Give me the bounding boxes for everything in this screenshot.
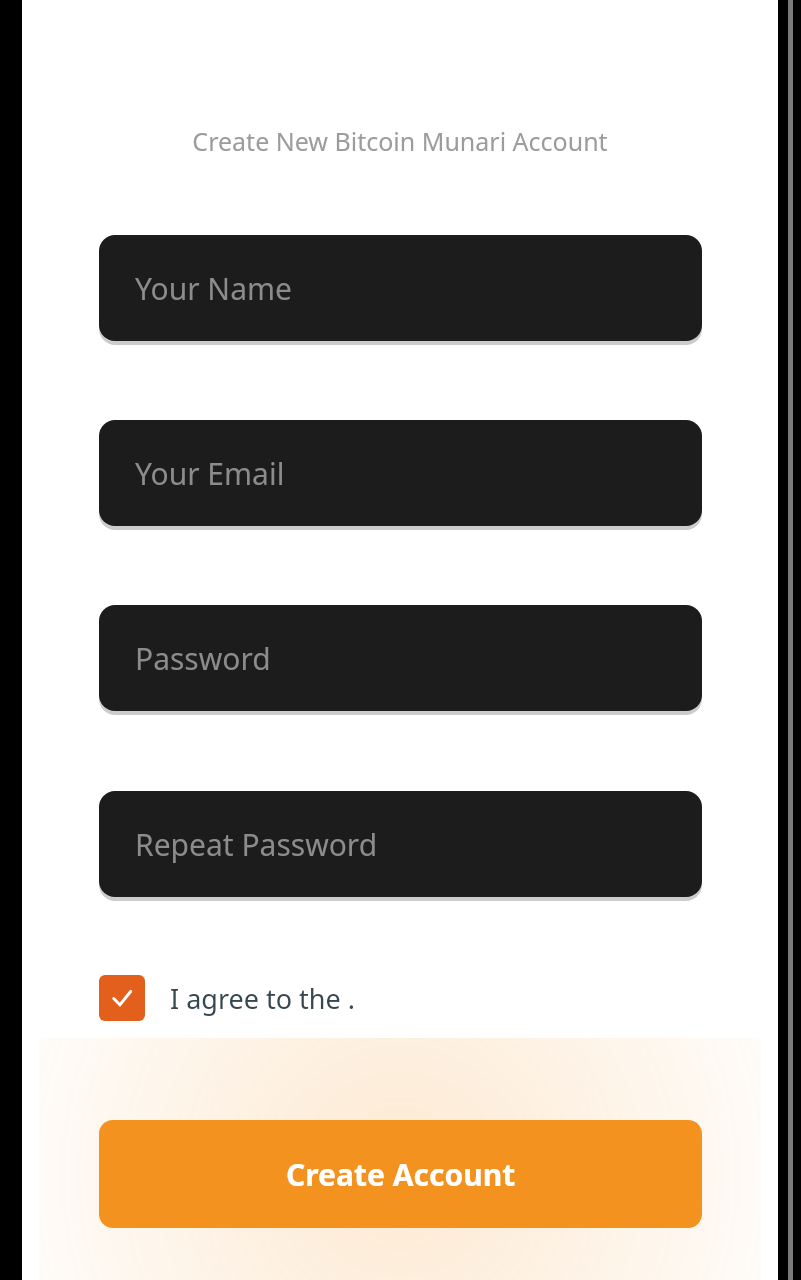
staticText: Create Account bbox=[286, 1154, 516, 1195]
button[interactable]: Your Email bbox=[99, 420, 702, 526]
staticText: Password bbox=[135, 638, 271, 679]
staticText: Your Email bbox=[135, 453, 285, 494]
staticText: Repeat Password bbox=[135, 824, 378, 865]
button[interactable]: Create Account bbox=[99, 1120, 702, 1228]
button[interactable]: Your Name bbox=[99, 235, 702, 341]
other: Agree to terms bbox=[99, 975, 145, 1021]
button[interactable]: Password bbox=[99, 605, 702, 711]
button[interactable]: Agree to terms bbox=[99, 968, 356, 1028]
button[interactable]: Repeat Password bbox=[99, 791, 702, 897]
staticText: I agree to the . bbox=[170, 980, 356, 1017]
staticText: Your Name bbox=[135, 268, 292, 309]
staticText: Create New Bitcoin Munari Account bbox=[192, 124, 608, 158]
